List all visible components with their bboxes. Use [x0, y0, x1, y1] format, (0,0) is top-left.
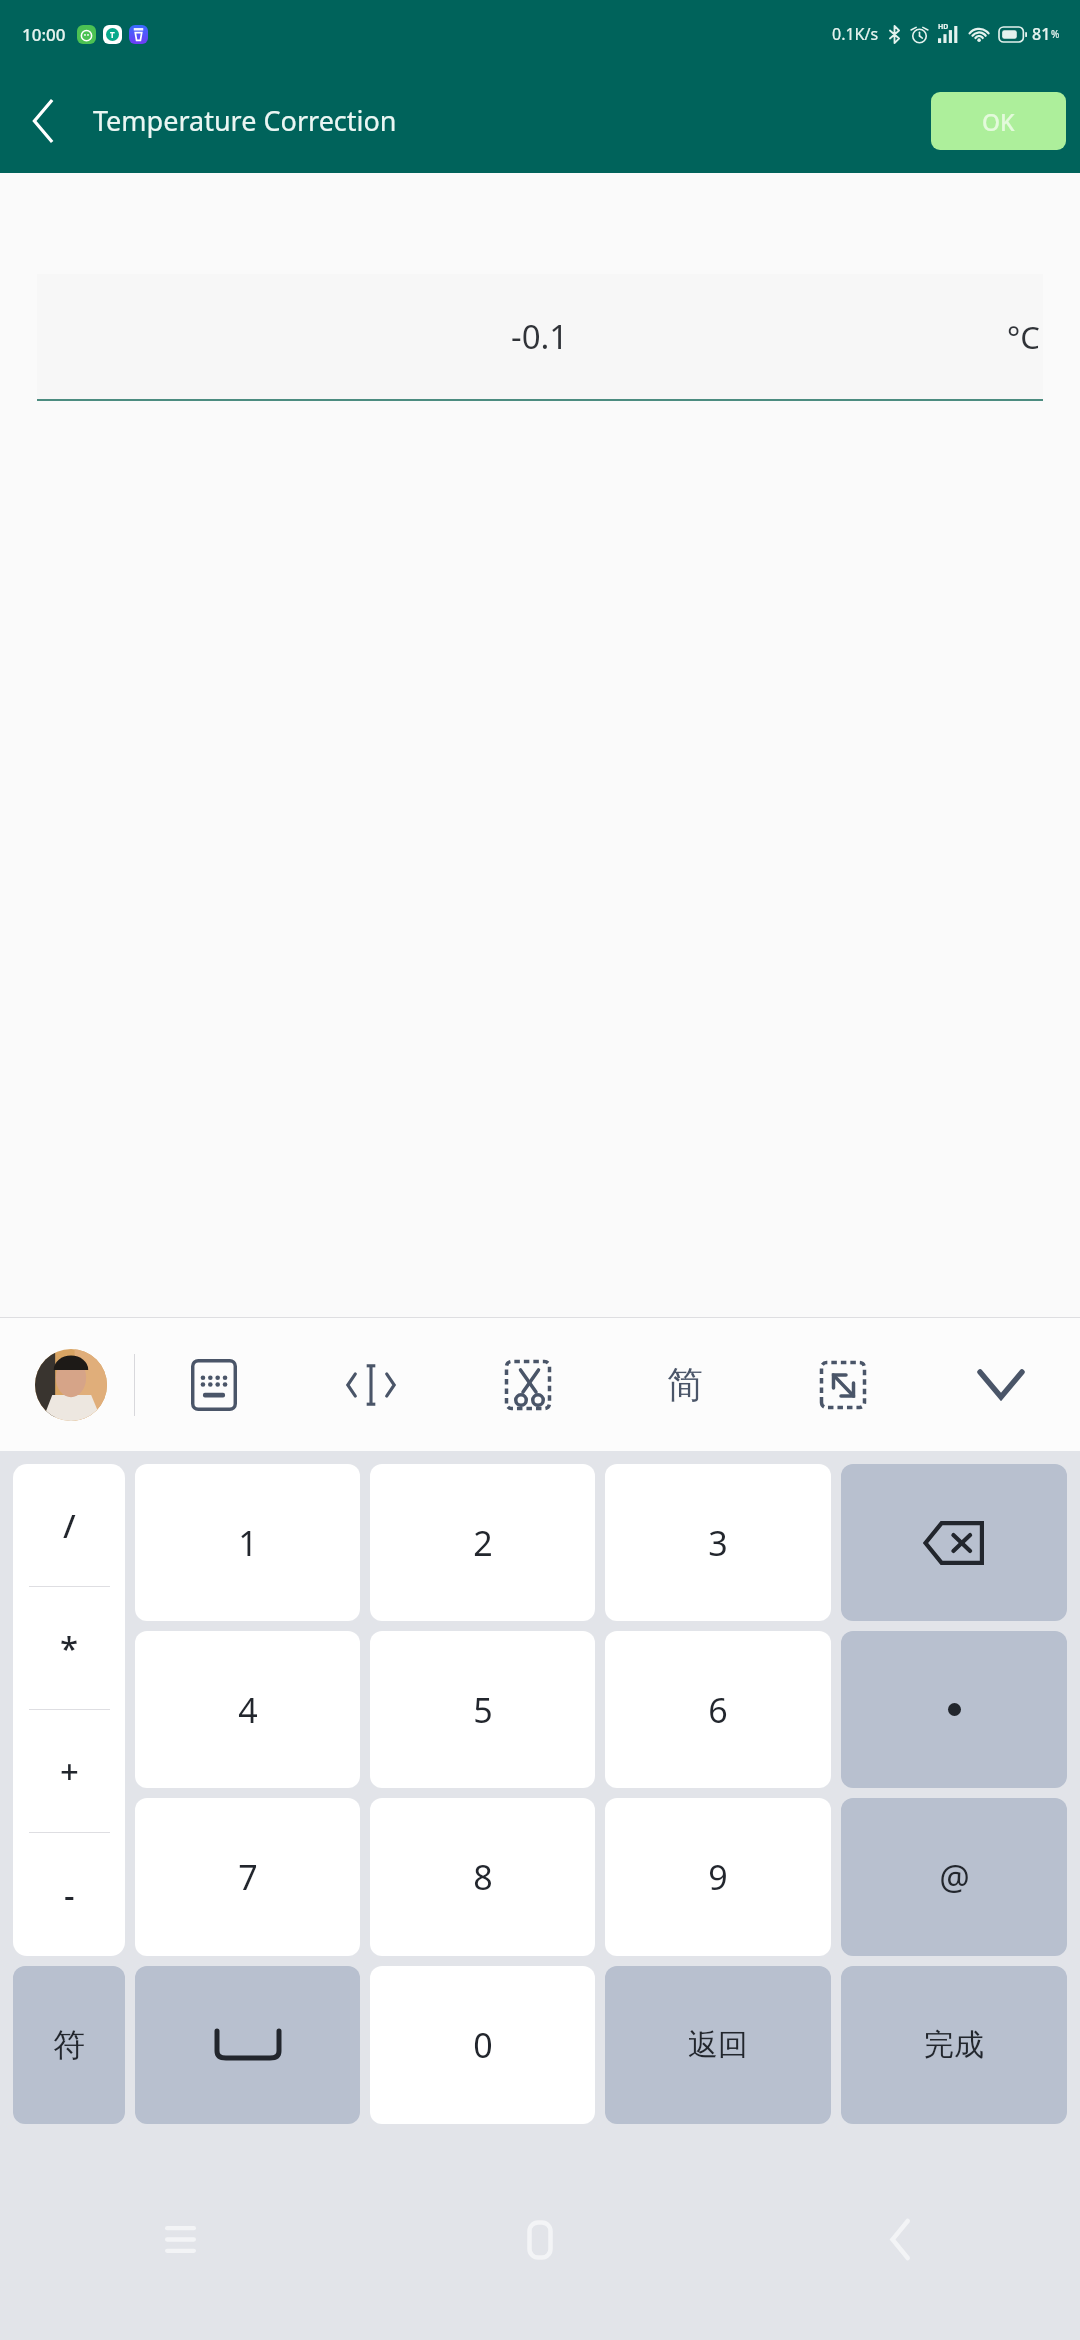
button[interactable]: @	[841, 1798, 1067, 1956]
button[interactable]: -	[13, 1833, 125, 1956]
staticText: 3	[708, 1520, 728, 1566]
button[interactable]: Space	[135, 1966, 360, 2124]
button[interactable]: 完成	[841, 1966, 1067, 2124]
button[interactable]: 8	[370, 1798, 595, 1956]
staticText: 81	[1032, 23, 1051, 45]
staticText: +	[60, 1749, 79, 1794]
staticText: /	[63, 1503, 76, 1548]
staticText: Temperature Correction	[93, 102, 397, 139]
button[interactable]: /	[13, 1464, 125, 1587]
button[interactable]: 1	[135, 1464, 360, 1621]
staticText: °C	[1007, 316, 1040, 358]
button[interactable]: Back	[12, 89, 76, 153]
button[interactable]: -0.1	[37, 274, 1043, 399]
staticText: 1	[238, 1520, 258, 1566]
staticText: @	[939, 1854, 970, 1900]
staticText: 符	[53, 2025, 85, 2065]
button[interactable]: Cut	[449, 1318, 606, 1451]
staticText: 5	[473, 1687, 493, 1733]
staticText: *	[60, 1626, 79, 1671]
staticText: OK	[982, 106, 1015, 137]
button[interactable]: Decimal point	[841, 1631, 1067, 1788]
staticText: 7	[238, 1854, 258, 1900]
button[interactable]: Backspace	[841, 1464, 1067, 1621]
button[interactable]: +	[13, 1710, 125, 1833]
staticText: %	[1051, 27, 1060, 41]
staticText: 6	[708, 1687, 728, 1733]
button[interactable]: Simplified Chinese	[606, 1318, 764, 1451]
staticText: -	[64, 1872, 75, 1917]
button[interactable]: Hide keyboard	[922, 1318, 1080, 1451]
staticText: 0	[473, 2022, 493, 2068]
staticText: HD	[938, 22, 949, 32]
button[interactable]: 4	[135, 1631, 360, 1788]
button[interactable]: 5	[370, 1631, 595, 1788]
button[interactable]: 9	[605, 1798, 831, 1956]
button[interactable]: Move cursor	[292, 1318, 449, 1451]
staticText: 10:00	[22, 23, 66, 46]
button[interactable]: Profile	[35, 1349, 107, 1421]
button[interactable]: 6	[605, 1631, 831, 1788]
button[interactable]: 符	[13, 1966, 125, 2124]
staticText: 4	[238, 1687, 258, 1733]
staticText: 简	[667, 1362, 703, 1407]
button[interactable]: 0	[370, 1966, 595, 2124]
staticText: 9	[708, 1854, 728, 1900]
button[interactable]: 2	[370, 1464, 595, 1621]
button[interactable]: *	[13, 1587, 125, 1710]
staticText: 返回	[688, 2026, 748, 2064]
staticText: -0.1	[511, 314, 569, 359]
staticText: 0.1K/s	[832, 23, 879, 45]
button[interactable]: 3	[605, 1464, 831, 1621]
button[interactable]: Resize keyboard	[764, 1318, 922, 1451]
staticText: 完成	[924, 2026, 984, 2064]
staticText: 8	[473, 1854, 493, 1900]
button[interactable]: 返回	[605, 1966, 831, 2124]
staticText: 2	[473, 1520, 493, 1566]
button[interactable]: OK	[931, 92, 1066, 150]
button[interactable]: Keyboard layout	[135, 1318, 292, 1451]
staticText: T	[110, 29, 115, 40]
button[interactable]: 7	[135, 1798, 360, 1956]
